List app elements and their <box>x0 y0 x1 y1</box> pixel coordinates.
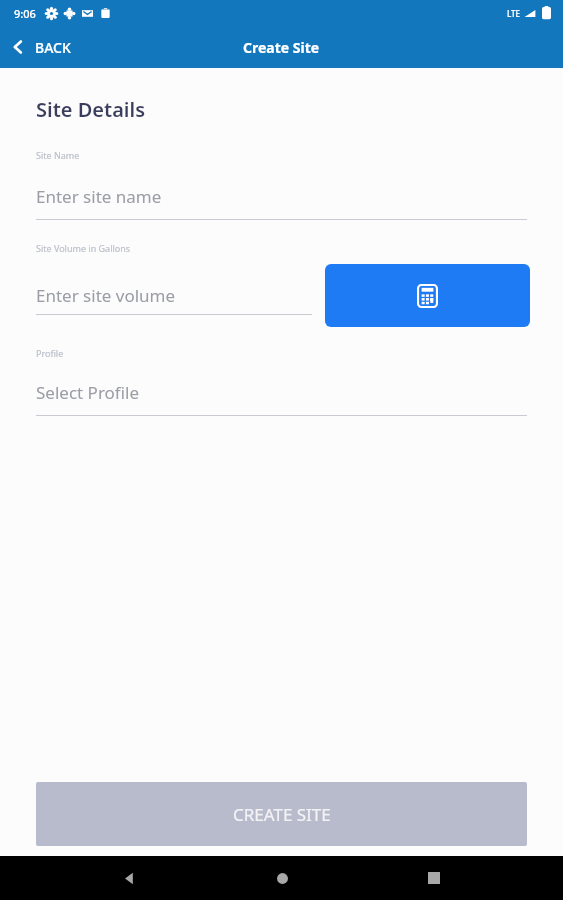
button[interactable]: Recent apps <box>410 856 458 900</box>
staticText: Site Name <box>36 149 80 161</box>
staticText: 9:06 <box>14 6 36 21</box>
button[interactable]: Back <box>105 856 153 900</box>
button[interactable]: Calculator <box>325 264 530 327</box>
button[interactable]: CREATE SITE <box>36 782 527 846</box>
button[interactable]: Enter site volume <box>36 276 312 314</box>
button[interactable]: Select Profile <box>36 375 527 409</box>
staticText: BACK <box>35 38 71 57</box>
staticText: Create Site <box>243 38 320 57</box>
staticText: Enter site name <box>36 185 162 208</box>
staticText: Profile <box>36 347 64 359</box>
staticText: LTE <box>507 8 521 19</box>
staticText: Site Volume in Gallons <box>36 242 131 254</box>
button[interactable]: Enter site name <box>36 179 527 213</box>
button[interactable]: Home <box>258 856 306 900</box>
staticText: Site Details <box>36 96 146 123</box>
staticText: Enter site volume <box>36 284 176 307</box>
button[interactable]: BACK <box>0 26 83 68</box>
staticText: Select Profile <box>36 381 140 404</box>
staticText: CREATE SITE <box>233 803 331 826</box>
